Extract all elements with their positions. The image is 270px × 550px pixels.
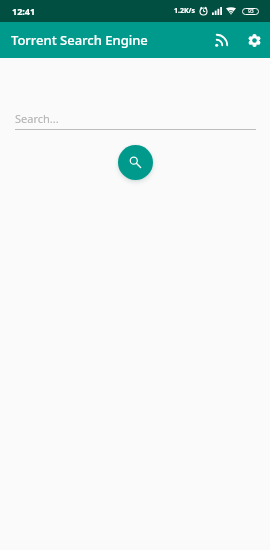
staticText: Search... bbox=[15, 111, 59, 126]
button[interactable]: Search bbox=[118, 145, 153, 180]
staticText: 12:41 bbox=[12, 5, 36, 17]
staticText: 93 bbox=[248, 8, 254, 15]
staticText: Torrent Search Engine bbox=[11, 31, 148, 49]
button[interactable]: Search... bbox=[0, 111, 270, 130]
staticText: 1.2K/s bbox=[174, 6, 196, 16]
button[interactable]: RSS feed bbox=[206, 25, 236, 55]
button[interactable]: Settings bbox=[239, 25, 269, 55]
